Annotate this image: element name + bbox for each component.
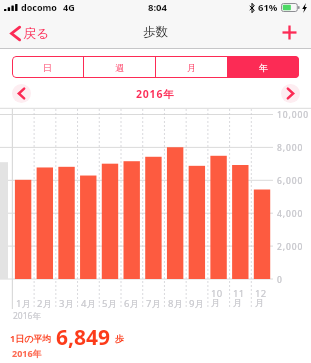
staticText: 3月 — [59, 297, 75, 310]
staticText: 2016年 — [12, 347, 42, 359]
button[interactable]: Next year — [281, 84, 300, 103]
staticText: 月 — [187, 62, 196, 73]
staticText: 2016年 — [136, 87, 175, 101]
staticText: 7月 — [146, 297, 162, 310]
button[interactable]: 週 — [84, 56, 155, 78]
staticText: 0 — [277, 274, 283, 286]
staticText: 月 — [255, 297, 265, 309]
staticText: 8,000 — [277, 142, 304, 154]
staticText: 1月 — [16, 297, 32, 310]
button[interactable]: 日 — [12, 56, 83, 78]
staticText: 2月 — [37, 297, 53, 310]
staticText: 歩数 — [143, 24, 168, 40]
button[interactable]: Add — [277, 20, 301, 44]
staticText: 8月 — [168, 297, 184, 310]
staticText: 歩 — [115, 333, 124, 344]
staticText: 4月 — [81, 297, 97, 310]
button[interactable]: 戻る — [10, 20, 50, 46]
staticText: 4,000 — [277, 208, 304, 220]
staticText: 2016年 — [13, 310, 41, 322]
staticText: 12 — [255, 287, 267, 300]
staticText: 週 — [115, 62, 124, 73]
staticText: 61% — [258, 1, 278, 14]
staticText: 4G — [63, 1, 75, 13]
button[interactable]: 月 — [156, 56, 227, 78]
staticText: 2,000 — [277, 241, 304, 253]
staticText: 5月 — [102, 297, 118, 310]
staticText: 10 — [211, 287, 223, 300]
staticText: 月 — [211, 297, 221, 309]
button[interactable]: Previous year — [12, 84, 31, 103]
staticText: docomo — [21, 1, 57, 13]
staticText: 10,000 — [277, 109, 310, 121]
staticText: 月 — [233, 297, 243, 309]
staticText: 9月 — [189, 297, 205, 310]
staticText: 戻る — [23, 25, 50, 41]
staticText: 8:04 — [148, 1, 167, 14]
button[interactable]: 年 — [228, 56, 299, 78]
staticText: 年 — [259, 62, 268, 73]
staticText: 6月 — [124, 297, 140, 310]
staticText: 11 — [233, 287, 245, 300]
staticText: 6,000 — [277, 175, 304, 187]
staticText: 日 — [43, 62, 52, 73]
staticText: 1日の平均 — [10, 332, 52, 344]
staticText: 6,849 — [56, 323, 111, 352]
